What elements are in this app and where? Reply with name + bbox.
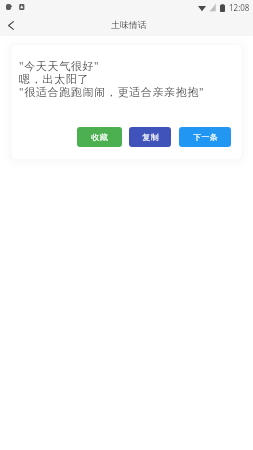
staticText: 12:08 <box>229 2 250 13</box>
button[interactable]: 收藏 <box>77 127 122 147</box>
button[interactable]: Back <box>0 15 22 36</box>
staticText: "今天天气很好" 嗯，出太阳了 "很适合跑跑闹闹，更适合亲亲抱抱" <box>19 58 205 99</box>
button[interactable]: 下一条 <box>179 127 231 147</box>
staticText: 下一条 <box>193 132 218 142</box>
button[interactable]: 复制 <box>129 127 171 147</box>
staticText: 收藏 <box>91 132 108 142</box>
staticText: 土味情话 <box>111 20 147 31</box>
staticText: 复制 <box>142 132 159 142</box>
